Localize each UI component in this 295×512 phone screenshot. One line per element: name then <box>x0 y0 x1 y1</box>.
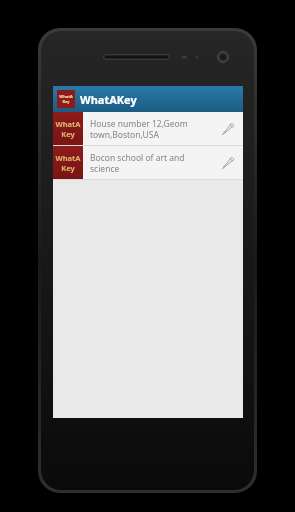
button[interactable]: Edit <box>213 146 243 179</box>
staticText: WhatA <box>59 94 73 99</box>
button[interactable]: WhatA <box>53 112 243 145</box>
staticText: Key <box>62 99 70 104</box>
button[interactable]: Edit <box>213 112 243 145</box>
staticText: House number 12,Geom town,Boston,USA <box>90 118 209 140</box>
staticText: Key <box>61 129 75 139</box>
staticText: Bocon school of art and science <box>90 152 209 174</box>
staticText: WhatAKey <box>80 92 137 107</box>
staticText: WhatA <box>55 153 81 163</box>
staticText: Key <box>61 163 75 173</box>
staticText: WhatA <box>55 119 81 129</box>
button[interactable]: WhatA <box>53 146 243 179</box>
